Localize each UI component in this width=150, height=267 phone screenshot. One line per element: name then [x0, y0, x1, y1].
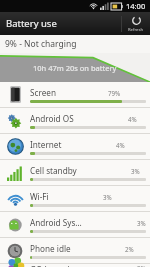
- staticText: Screen: [30, 87, 56, 98]
- staticText: 4%: [128, 115, 137, 123]
- button[interactable]: Android System: [0, 212, 150, 238]
- button[interactable]: 9% - Not charging: [0, 35, 150, 53]
- staticText: 3%: [137, 219, 146, 227]
- staticText: Cell standby: [30, 165, 77, 176]
- button[interactable]: Phone idle: [0, 238, 150, 264]
- staticText: Phone idle: [30, 243, 71, 254]
- staticText: Battery use: [6, 17, 57, 30]
- staticText: Refresh: [128, 27, 144, 33]
- button[interactable]: Cell standby: [0, 160, 150, 186]
- staticText: 79%: [108, 89, 121, 97]
- button[interactable]: GO Launcher EX: [0, 264, 150, 267]
- staticText: 2%: [125, 245, 134, 253]
- button[interactable]: Screen: [0, 82, 150, 108]
- button[interactable]: Android OS: [0, 108, 150, 134]
- button[interactable]: Wi-Fi: [0, 186, 150, 212]
- button[interactable]: Refresh: [122, 12, 150, 35]
- staticText: Internet: [30, 139, 62, 150]
- staticText: 2%: [137, 264, 146, 267]
- staticText: 9% - Not charging: [5, 38, 77, 50]
- button[interactable]: Internet: [0, 134, 150, 160]
- staticText: 10h 47m 20s on battery: [33, 63, 117, 73]
- staticText: 14:00: [126, 1, 146, 11]
- staticText: 4%: [116, 141, 125, 149]
- staticText: Android OS: [30, 113, 74, 124]
- staticText: 3%: [131, 167, 140, 175]
- staticText: Wi-Fi: [30, 191, 49, 202]
- staticText: Android System: [30, 217, 83, 228]
- staticText: GO Launcher EX: [30, 264, 83, 267]
- button[interactable]: 10h 47m 20s on battery: [0, 53, 150, 82]
- staticText: 3%: [103, 193, 112, 201]
